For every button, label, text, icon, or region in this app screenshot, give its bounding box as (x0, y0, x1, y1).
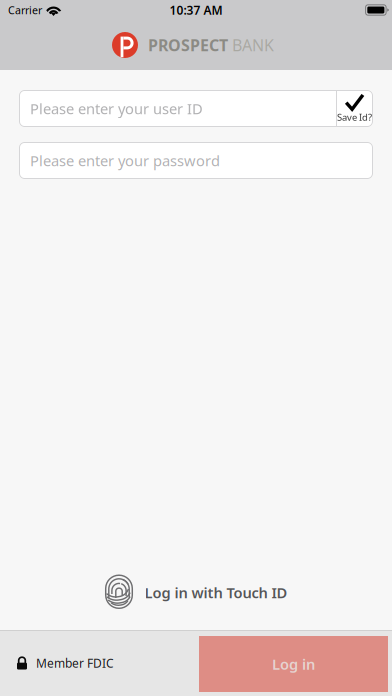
staticText: Log in (272, 654, 315, 674)
staticText: Please enter your password (30, 151, 220, 170)
button[interactable]: Log in (199, 636, 388, 692)
staticText: Member FDIC (36, 655, 114, 671)
staticText: Please enter your user ID (30, 99, 203, 118)
button[interactable]: Save Id? (336, 90, 373, 126)
staticText: BANK (232, 34, 274, 56)
staticText: 10:37 AM (169, 2, 222, 18)
staticText: Carrier (8, 3, 42, 17)
staticText: Log in with Touch ID (144, 583, 287, 602)
button[interactable]: Log in with Touch ID (104, 576, 287, 609)
staticText: PROSPECT (148, 34, 228, 56)
staticText: Save Id? (337, 111, 372, 123)
